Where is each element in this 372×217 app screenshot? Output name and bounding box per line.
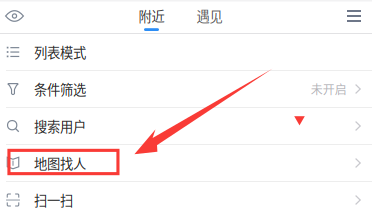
- staticText: 条件筛选: [34, 79, 86, 99]
- staticText: 未开启: [311, 80, 347, 98]
- button[interactable]: 条件筛选: [0, 71, 372, 108]
- staticText: 扫一扫: [34, 190, 73, 210]
- button[interactable]: 搜索用户: [0, 108, 372, 145]
- staticText: 搜索用户: [34, 116, 86, 136]
- staticText: 地图找人: [34, 153, 86, 173]
- staticText: 附近: [138, 6, 164, 25]
- button[interactable]: Stealth mode: [0, 2, 36, 31]
- button[interactable]: 附近: [122, 2, 180, 32]
- button[interactable]: 列表模式: [0, 34, 372, 71]
- button[interactable]: Menu: [335, 2, 372, 31]
- button[interactable]: 扫一扫: [0, 182, 372, 217]
- staticText: 遇见: [196, 6, 222, 25]
- button[interactable]: 地图找人: [0, 145, 372, 182]
- button[interactable]: 遇见: [180, 2, 238, 32]
- staticText: 列表模式: [34, 42, 86, 62]
